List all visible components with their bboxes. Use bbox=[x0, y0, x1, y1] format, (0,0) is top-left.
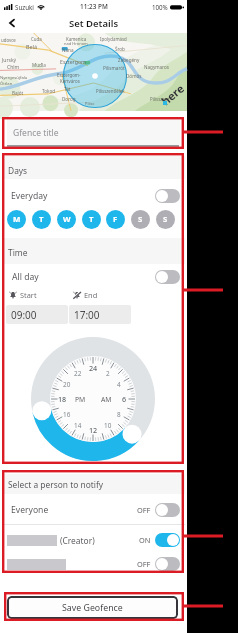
button[interactable]: Switch off bbox=[155, 270, 180, 284]
staticText: Belá bbox=[26, 43, 37, 50]
staticText: Tokod bbox=[42, 88, 56, 94]
staticText: Everyone bbox=[11, 504, 49, 516]
button[interactable]: Back bbox=[4, 15, 20, 31]
staticText: Suzuki bbox=[15, 3, 34, 11]
staticText: Muďla bbox=[32, 62, 46, 68]
staticText: Esztergom bbox=[60, 58, 86, 65]
button[interactable]: All day bbox=[2, 268, 185, 286]
staticText: Bajót bbox=[12, 90, 24, 96]
staticText: Esztergom- bbox=[57, 72, 81, 78]
button[interactable]: W bbox=[57, 210, 76, 229]
staticText: 17:00 bbox=[74, 308, 100, 322]
staticText: Zebegény bbox=[118, 57, 140, 63]
staticText: 14 bbox=[74, 421, 82, 430]
staticText: F bbox=[113, 214, 118, 225]
staticText: 20 bbox=[63, 380, 71, 389]
staticText: S bbox=[163, 214, 168, 225]
staticText: 11:23 PM bbox=[80, 2, 108, 11]
staticText: Nyergesújfalu bbox=[0, 75, 28, 81]
button[interactable]: Switch off bbox=[155, 503, 180, 517]
staticText: Nána bbox=[62, 47, 74, 53]
staticText: Save Geofence bbox=[62, 602, 123, 614]
button[interactable]: T bbox=[82, 210, 101, 229]
staticText: 100% bbox=[152, 3, 168, 11]
button[interactable]: Everyone bbox=[2, 501, 185, 518]
staticText: Pilisszent bbox=[150, 96, 170, 102]
button[interactable]: (Creator) bbox=[2, 532, 185, 548]
staticText: ON bbox=[139, 535, 151, 545]
staticText: All day bbox=[12, 271, 39, 283]
button[interactable]: S bbox=[156, 210, 175, 229]
staticText: Nagymaros bbox=[144, 64, 169, 70]
staticText: Start bbox=[20, 290, 37, 300]
button[interactable]: T bbox=[32, 210, 51, 229]
staticText: T bbox=[89, 214, 94, 225]
staticText: Kertváros bbox=[60, 78, 80, 84]
staticText: 09:00 bbox=[11, 308, 37, 322]
staticText: Kamenica bbox=[66, 36, 87, 42]
button[interactable]: Switch off bbox=[155, 189, 180, 203]
staticText: Everyday bbox=[11, 190, 48, 202]
staticText: Chlm bbox=[7, 64, 20, 71]
staticText: Óttlan bbox=[0, 81, 13, 87]
staticText: Dömös bbox=[126, 73, 142, 79]
button[interactable]: Switch off bbox=[155, 557, 180, 571]
staticText: Tát bbox=[64, 86, 71, 92]
staticText: W bbox=[63, 214, 71, 225]
button[interactable]: M bbox=[7, 210, 26, 229]
staticText: Pilisszentlélek bbox=[96, 88, 125, 94]
button[interactable]: 09:00 bbox=[6, 305, 68, 324]
staticText: 22 bbox=[74, 369, 82, 378]
button[interactable]: Gfence title bbox=[7, 119, 180, 146]
staticText: Ipolydamásd bbox=[100, 36, 127, 42]
staticText: M bbox=[13, 214, 21, 225]
staticText: Set Details bbox=[69, 17, 119, 30]
staticText: Dorog bbox=[62, 96, 76, 102]
staticText: OFF bbox=[137, 559, 151, 569]
staticText: PM bbox=[75, 395, 86, 404]
staticText: 6 bbox=[122, 394, 127, 404]
staticText: Select a person to notify bbox=[8, 479, 104, 490]
button[interactable]: Save Geofence bbox=[7, 596, 178, 619]
staticText: T bbox=[39, 214, 44, 225]
button[interactable]: S bbox=[131, 210, 150, 229]
staticText: Cuda bbox=[31, 36, 42, 42]
button[interactable]: Switch on bbox=[155, 533, 180, 547]
staticText: nad Hronom bbox=[64, 41, 88, 46]
staticText: 12 bbox=[89, 425, 98, 435]
staticText: Gfence title bbox=[13, 127, 59, 139]
staticText: 24 bbox=[89, 363, 98, 373]
staticText: 16 bbox=[63, 410, 71, 419]
staticText: 4 bbox=[117, 380, 121, 389]
staticText: Time bbox=[8, 247, 28, 258]
staticText: 2 bbox=[106, 369, 110, 378]
staticText: Pilismarót bbox=[103, 65, 125, 71]
staticText: Pilisc bbox=[85, 101, 95, 106]
button[interactable]: F bbox=[106, 210, 125, 229]
button[interactable]: Everyday bbox=[2, 187, 185, 205]
button[interactable]: 17:00 bbox=[69, 305, 131, 324]
staticText: OFF bbox=[137, 505, 151, 515]
staticText: udovce bbox=[1, 37, 16, 43]
staticText: Days bbox=[8, 165, 28, 176]
staticText: Jurský bbox=[2, 57, 17, 64]
staticText: S bbox=[138, 214, 143, 225]
staticText: 18 bbox=[58, 394, 67, 404]
staticText: (Creator) bbox=[60, 535, 95, 546]
staticText: 8 bbox=[117, 410, 121, 419]
staticText: End bbox=[84, 290, 98, 300]
button[interactable]: OFF bbox=[2, 556, 185, 572]
staticText: AM bbox=[101, 395, 112, 404]
staticText: here bbox=[158, 81, 187, 108]
staticText: 10 bbox=[104, 421, 112, 430]
staticText: Šrob bbox=[115, 46, 125, 52]
